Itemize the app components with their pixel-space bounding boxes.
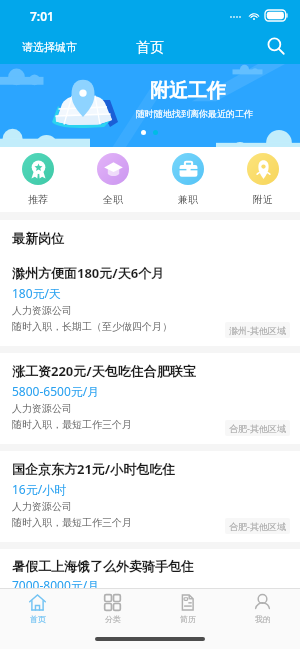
button[interactable]: 分类 (75, 594, 150, 624)
staticText: 16元/小时 (12, 481, 67, 497)
button[interactable]: 请选择城市 (0, 34, 87, 58)
staticText: 随时入职，最短工作三个月 (12, 418, 132, 431)
staticText: 推荐 (28, 193, 48, 206)
button[interactable]: 全职 (75, 147, 150, 212)
staticText: 人力资源公司 (12, 304, 72, 317)
button[interactable]: 我的 (225, 594, 300, 624)
staticText: 首页 (30, 614, 46, 624)
staticText: 兼职 (178, 193, 198, 206)
staticText: 首页 (136, 39, 164, 57)
staticText: 7:01 (30, 8, 54, 24)
staticText: 全职 (103, 193, 123, 206)
staticText: 请选择城市 (22, 40, 77, 54)
staticText: 180元/天 (12, 285, 62, 301)
staticText: 国企京东方21元/小时包吃住 (12, 460, 290, 478)
button[interactable]: 暑假工上海饿了么外卖骑手包住 (0, 549, 300, 588)
button[interactable]: 附近 (225, 147, 300, 212)
button[interactable]: 推荐 (0, 147, 75, 212)
staticText: 我的 (255, 614, 271, 624)
button[interactable]: 附近工作 (0, 64, 300, 147)
staticText: 5800-6500元/月 (12, 383, 100, 399)
staticText: 简历 (180, 614, 196, 624)
button[interactable]: 简历 (150, 594, 225, 624)
staticText: 附近 (253, 193, 273, 206)
staticText: 随时入职，最短工作三个月 (12, 516, 132, 529)
button[interactable]: 涨工资220元/天包吃住合肥联宝 (0, 353, 300, 444)
button[interactable]: 滁州方便面180元/天6个月 (0, 255, 300, 346)
staticText: 随时入职，长期工（至少做四个月） (12, 320, 172, 333)
staticText: 最新岗位 (12, 230, 64, 246)
staticText: 滁州方便面180元/天6个月 (12, 264, 290, 282)
staticText: 分类 (105, 614, 121, 624)
button[interactable]: 兼职 (150, 147, 225, 212)
staticText: 合肥-其他区域 (229, 422, 286, 434)
staticText: 合肥-其他区域 (229, 520, 286, 532)
staticText: 附近工作 (150, 79, 226, 103)
staticText: 人力资源公司 (12, 500, 72, 513)
staticText: 滁州-其他区域 (229, 324, 286, 336)
button[interactable]: Search (260, 30, 292, 62)
staticText: 涨工资220元/天包吃住合肥联宝 (12, 362, 290, 380)
staticText: 7000-8000元/月 (12, 577, 100, 588)
button[interactable]: 国企京东方21元/小时包吃住 (0, 451, 300, 542)
staticText: 暑假工上海饿了么外卖骑手包住 (12, 558, 290, 574)
button[interactable]: 首页 (0, 594, 75, 624)
staticText: 随时随地找到离你最近的工作 (136, 108, 253, 119)
staticText: 人力资源公司 (12, 402, 72, 415)
